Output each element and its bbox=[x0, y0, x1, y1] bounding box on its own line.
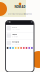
staticText: 12 – 19 Oct bbox=[12, 28, 19, 30]
staticText: Lisbon bbox=[12, 34, 17, 35]
staticText: Trips bbox=[7, 21, 11, 23]
staticText: NOMAD bbox=[14, 5, 25, 9]
staticText: Every journey, beautifully planned bbox=[8, 13, 32, 15]
staticText: Reykjavík bbox=[12, 41, 19, 43]
staticText: 21 – 28 Dec bbox=[12, 43, 20, 45]
staticText: 3 – 9 Nov bbox=[12, 36, 18, 38]
staticText: Kyoto bbox=[12, 26, 17, 28]
